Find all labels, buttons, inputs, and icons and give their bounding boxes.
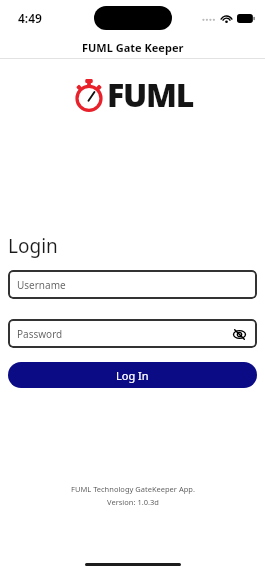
button[interactable]: Username (8, 270, 257, 299)
staticText: Log In (116, 368, 149, 383)
staticText: Password (17, 327, 63, 341)
staticText: Version: 1.0.3d (107, 497, 159, 507)
staticText: FUML Gate Keeper (82, 40, 184, 55)
staticText: FUML Technology GateKeeper App. (71, 484, 195, 494)
button[interactable]: Password (8, 319, 257, 348)
staticText: Login (8, 233, 58, 259)
button[interactable]: Log In (8, 362, 257, 388)
staticText: FUML (107, 73, 194, 117)
staticText: 4:49 (18, 10, 42, 26)
button[interactable]: Show password (230, 325, 248, 343)
staticText: Username (17, 278, 66, 292)
